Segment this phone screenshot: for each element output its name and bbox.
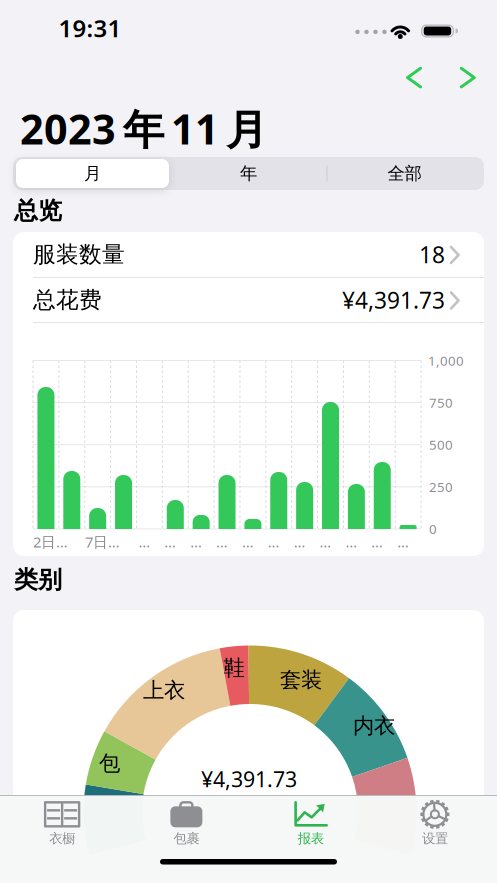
staticText: … <box>320 532 332 551</box>
staticText: 500 <box>429 436 453 453</box>
staticText: 250 <box>429 478 453 496</box>
staticText: 类别 <box>14 565 62 594</box>
staticText: 总览 <box>14 196 62 225</box>
staticText: 套装 <box>280 667 322 693</box>
staticText: … <box>397 532 409 551</box>
staticText: … <box>216 532 228 551</box>
staticText: 2日… <box>33 532 68 551</box>
staticText: … <box>268 532 280 551</box>
staticText: 服装数量 <box>33 241 125 268</box>
staticText: 报表 <box>298 830 324 847</box>
staticText: 设置 <box>422 830 448 847</box>
staticText: 750 <box>429 394 453 411</box>
staticText: 衣橱 <box>49 830 75 847</box>
button[interactable]: 服装数量 <box>13 232 484 277</box>
staticText: 内衣 <box>353 713 395 739</box>
button[interactable]: 衣橱 <box>0 799 124 849</box>
button[interactable]: 月 <box>16 159 169 188</box>
button[interactable]: 年 <box>172 159 325 188</box>
staticText: … <box>371 532 383 551</box>
staticText: 包 <box>99 750 120 777</box>
staticText: 0 <box>429 520 437 538</box>
staticText: 18 <box>419 239 445 269</box>
staticText: 上衣 <box>143 677 185 704</box>
staticText: 年 <box>240 163 257 184</box>
staticText: … <box>294 532 306 551</box>
staticText: 包裹 <box>173 830 199 847</box>
button[interactable]: 总花费 <box>13 277 484 322</box>
staticText: 19:31 <box>58 12 121 44</box>
staticText: 月 <box>84 163 101 184</box>
staticText: 全部 <box>387 163 421 184</box>
staticText: 2023 年 11 月 <box>20 101 267 156</box>
staticText: 1,000 <box>428 352 464 369</box>
staticText: 总花费 <box>33 286 102 314</box>
staticText: ¥4,391.73 <box>342 285 445 315</box>
button[interactable]: 报表 <box>248 799 373 849</box>
staticText: … <box>190 532 202 551</box>
button[interactable]: 全部 <box>328 159 481 188</box>
staticText: … <box>138 532 150 551</box>
staticText: … <box>242 532 254 551</box>
button[interactable] <box>450 59 486 95</box>
staticText: … <box>164 532 176 551</box>
staticText: … <box>345 532 357 551</box>
button[interactable]: 包裹 <box>124 799 248 849</box>
button[interactable] <box>396 59 432 95</box>
staticText: 鞋 <box>223 655 244 681</box>
button[interactable]: 设置 <box>373 799 497 849</box>
staticText: ¥4,391.73 <box>201 765 297 793</box>
staticText: 7日… <box>85 532 120 551</box>
